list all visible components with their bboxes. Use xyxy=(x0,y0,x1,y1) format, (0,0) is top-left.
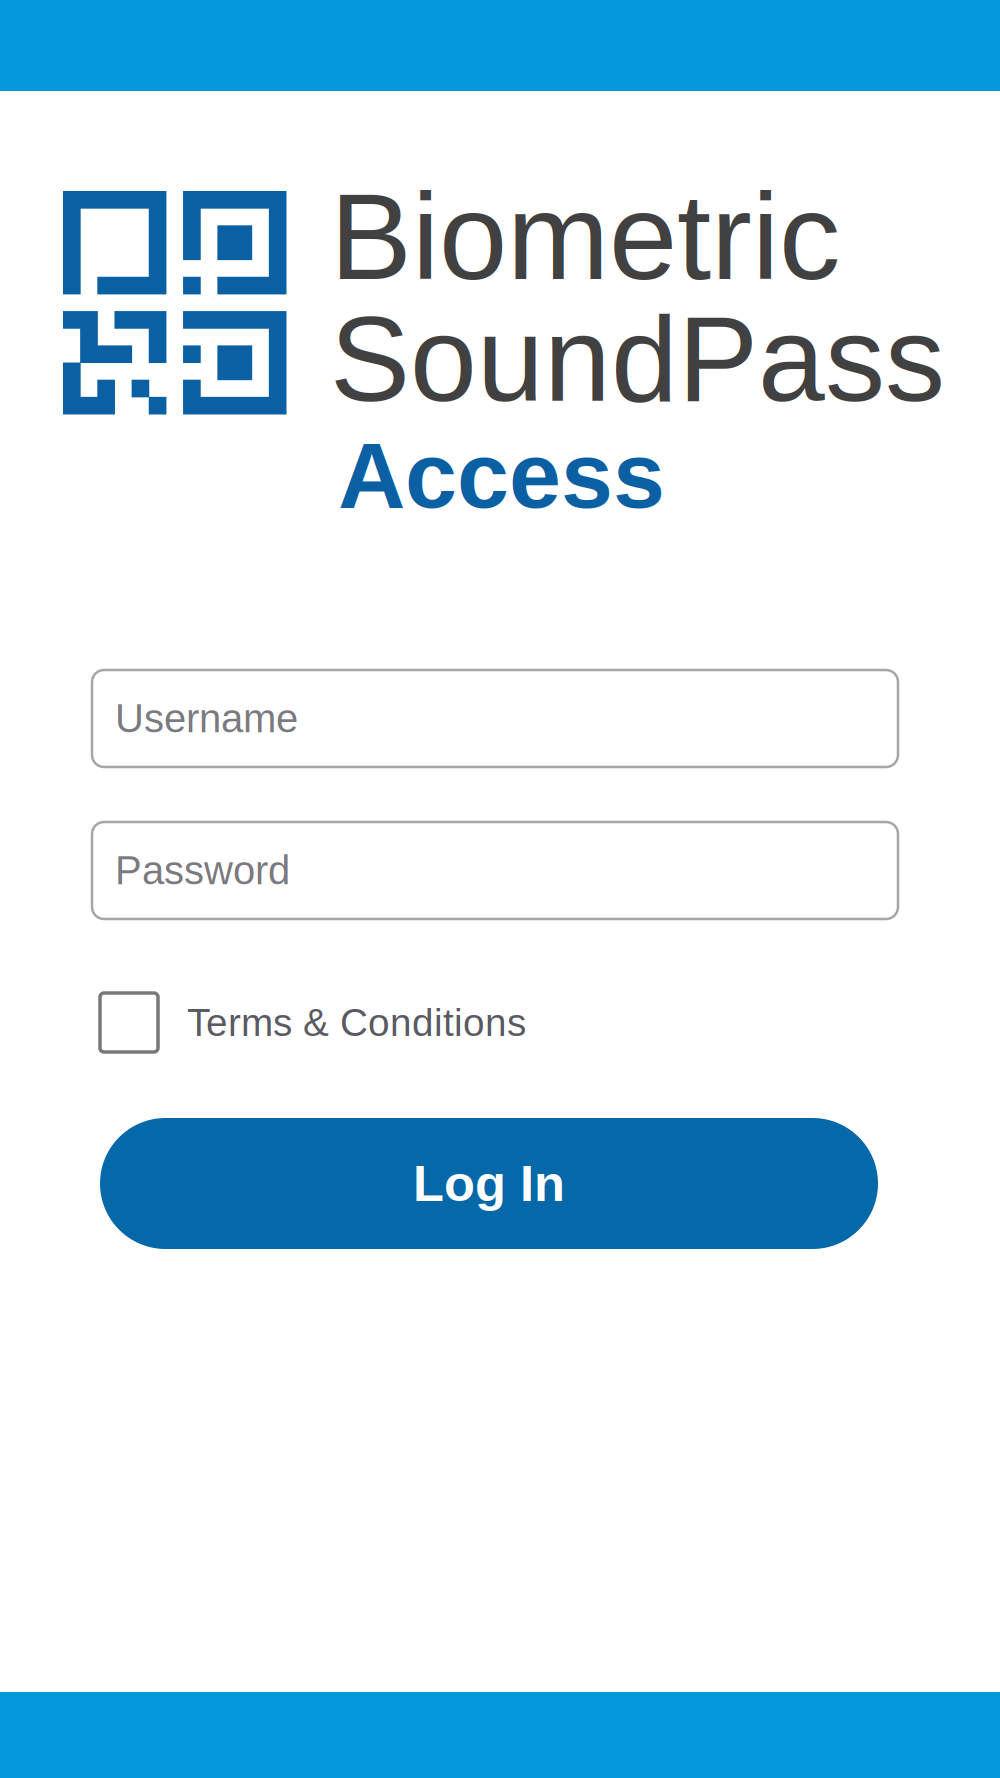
button[interactable]: Terms & Conditions xyxy=(100,993,526,1052)
staticText: Password xyxy=(115,848,290,893)
staticText: Biometric xyxy=(330,168,840,305)
button[interactable]: Log In xyxy=(100,1118,878,1249)
staticText: SoundPass xyxy=(330,292,945,426)
button[interactable]: Password xyxy=(92,822,898,919)
staticText: Access xyxy=(338,423,665,527)
staticText: Log In xyxy=(413,1155,565,1212)
button[interactable]: Username xyxy=(92,670,898,767)
staticText: Terms & Conditions xyxy=(187,1001,526,1044)
staticText: Username xyxy=(115,696,298,741)
